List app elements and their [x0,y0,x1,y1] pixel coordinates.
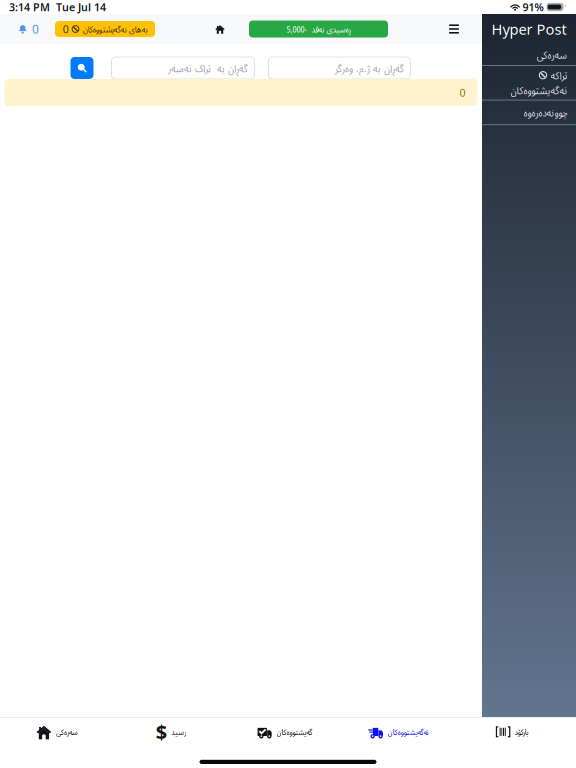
button[interactable]: گەیشتووەکان [228,718,341,746]
button[interactable]: چوونەدەرەوە [482,100,576,124]
button[interactable]: گەڕان بە ژ.م. وەرگر [268,57,410,79]
staticText: 91% [523,0,544,14]
staticText: 3:14 PM [9,0,50,14]
staticText: نەگەیشتووەکان [387,726,428,737]
staticText: نەگەیشتووەکان [510,83,567,97]
button[interactable]: Notifications [0,14,55,44]
staticText: 0 [32,21,39,37]
staticText: $ [156,718,167,745]
staticText: Hyper Post [491,19,566,39]
button[interactable]: Home [207,14,233,44]
staticText: چوونەدەرەوە [523,105,567,120]
button[interactable]: Search [70,57,93,79]
button[interactable]: سەرەکی [482,44,576,65]
button[interactable]: نەگەیشتووەکان [341,718,455,746]
staticText: Tue Jul 14 [56,0,106,14]
staticText: بەهای نەگەیشتووەکان [82,23,147,35]
button[interactable]: بارکۆد [455,718,569,746]
staticText: گەڕان بە ژ.م. وەرگر [334,61,403,75]
staticText: سەرەکی [55,726,77,737]
staticText: ڕەسیدی نەقد -5,000 [286,23,351,35]
button[interactable]: سەرەکی [0,718,114,746]
button[interactable]: Menu [440,14,468,44]
staticText: 0 [63,22,69,36]
staticText: رسید [171,726,186,737]
button[interactable]: $ [114,718,228,746]
staticText: گەیشتووەکان [276,726,312,737]
button[interactable]: ڕەسیدی نەقد -5,000 [249,20,388,37]
staticText: سەرەکی [536,47,567,62]
staticText: بارکۆد [514,726,528,737]
button[interactable]: 0 [55,21,155,37]
button[interactable]: گەڕان بە تراک نەمبەر [111,57,254,79]
staticText: تراکە [550,68,567,82]
button[interactable]: تراکە [482,66,576,100]
staticText: 0 [459,85,465,100]
staticText: گەڕان بە تراک نەمبەر [167,61,247,75]
